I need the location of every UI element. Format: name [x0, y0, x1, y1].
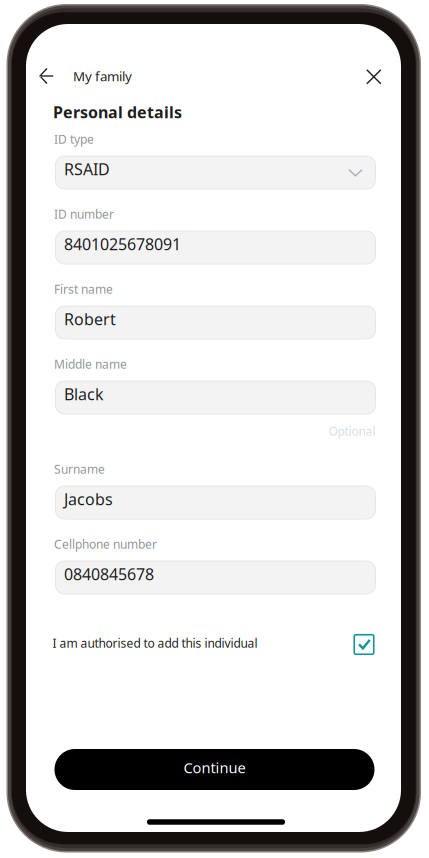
staticText: RSAID — [64, 158, 110, 180]
staticText: Robert — [64, 308, 116, 330]
button[interactable]: Close — [354, 57, 394, 97]
staticText: Surname — [54, 461, 105, 477]
staticText: Cellphone number — [54, 536, 157, 552]
staticText: First name — [54, 281, 113, 297]
staticText: ID number — [54, 206, 114, 222]
staticText: Black — [64, 383, 104, 405]
staticText: I am authorised to add this individual — [52, 635, 257, 651]
staticText: Jacobs — [64, 488, 113, 510]
staticText: 0840845678 — [64, 563, 154, 585]
staticText: Optional — [328, 423, 375, 439]
button[interactable]: Continue — [54, 749, 374, 790]
staticText: Personal details — [53, 101, 182, 123]
staticText: Middle name — [54, 356, 127, 372]
button[interactable]: I am authorised to add this individual — [55, 631, 375, 657]
staticText: Continue — [183, 758, 245, 777]
button[interactable]: RSAID — [55, 156, 375, 189]
button[interactable]: Back — [26, 56, 66, 96]
staticText: ID type — [54, 131, 94, 147]
staticText: 8401025678091 — [64, 233, 181, 255]
staticText: My family — [73, 67, 132, 85]
